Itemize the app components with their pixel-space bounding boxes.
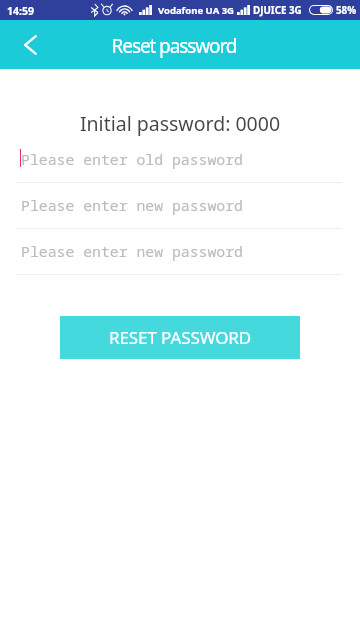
staticText: Please enter new password bbox=[21, 195, 243, 215]
staticText: Please enter old password bbox=[21, 149, 243, 169]
staticText: Reset password bbox=[0, 33, 354, 59]
staticText: RESET PASSWORD bbox=[109, 326, 252, 349]
staticText: Please enter new password bbox=[21, 241, 243, 261]
staticText: 14:59 bbox=[7, 4, 34, 18]
staticText: DJUICE 3G bbox=[253, 4, 302, 17]
staticText: 58% bbox=[336, 4, 357, 17]
staticText: Vodafone UA 3G bbox=[158, 4, 234, 17]
button[interactable]: Please enter new password bbox=[17, 188, 342, 222]
button[interactable]: RESET PASSWORD bbox=[60, 316, 300, 359]
button[interactable]: Please enter new password bbox=[17, 234, 342, 268]
button[interactable]: Back bbox=[6, 21, 54, 68]
staticText: Initial password: 0000 bbox=[0, 110, 360, 137]
button[interactable]: Please enter old password bbox=[17, 142, 342, 176]
